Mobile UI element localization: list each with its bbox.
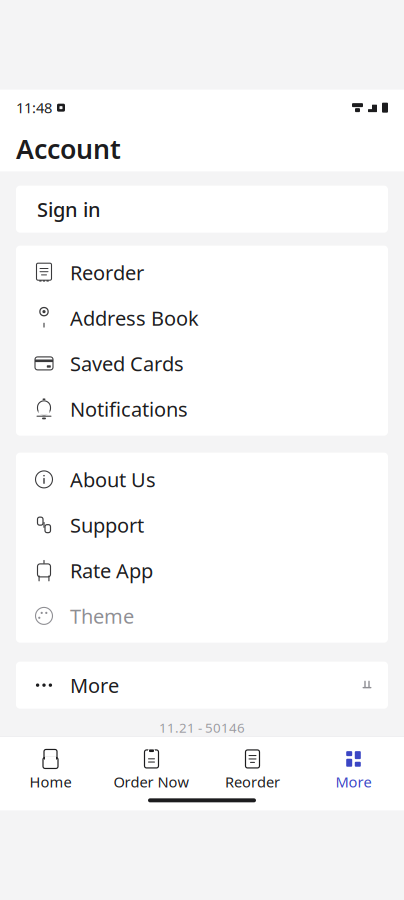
staticText: Theme [70, 603, 134, 629]
staticText: Home [29, 772, 71, 791]
button[interactable]: Rate App [16, 548, 388, 593]
button[interactable]: Notifications [16, 386, 388, 432]
button[interactable]: More [16, 662, 388, 709]
staticText: 11.21 - 50146 [159, 719, 245, 736]
staticText: More [70, 672, 119, 698]
button[interactable]: About Us [16, 457, 388, 502]
button[interactable]: Support [16, 502, 388, 548]
button[interactable]: Reorder [202, 743, 303, 797]
staticText: Reorder [70, 259, 144, 286]
staticText: Support [70, 512, 144, 538]
button[interactable]: Order Now [101, 743, 202, 797]
staticText: Reorder [225, 772, 280, 791]
staticText: Order Now [113, 772, 189, 791]
staticText: Saved Cards [70, 350, 184, 377]
button[interactable]: Saved Cards [16, 341, 388, 386]
button[interactable]: Address Book [16, 295, 388, 341]
staticText: Notifications [70, 396, 188, 422]
staticText: Sign in [37, 196, 101, 222]
staticText: About Us [70, 466, 156, 493]
button[interactable]: More [303, 743, 404, 797]
button[interactable]: Sign in [16, 186, 388, 233]
button[interactable]: Home [0, 743, 101, 797]
staticText: 11:48 [16, 98, 52, 117]
button[interactable]: Theme [16, 593, 388, 639]
staticText: Address Book [70, 305, 199, 331]
button[interactable]: Reorder [16, 250, 388, 295]
staticText: More [335, 772, 371, 791]
staticText: Account [16, 131, 121, 166]
staticText: Rate App [70, 557, 153, 584]
